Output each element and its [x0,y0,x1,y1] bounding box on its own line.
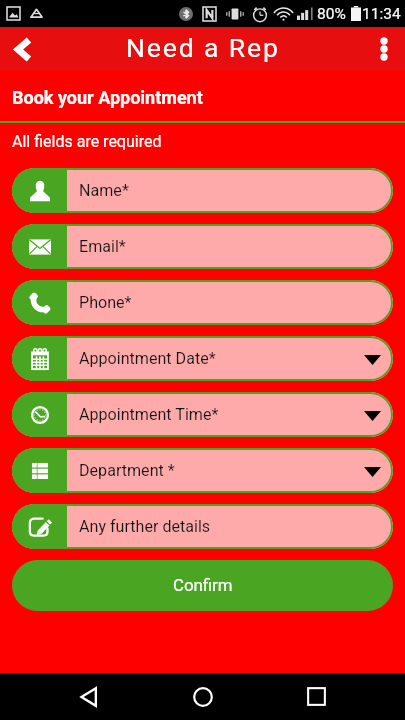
button[interactable]: Any further details [12,504,393,549]
staticText: Appointment Date* [79,349,364,368]
button[interactable]: Back [65,673,113,720]
staticText: Phone* [79,293,393,312]
staticText: Need a Rep [126,32,280,63]
button[interactable]: Phone* [12,280,393,325]
button[interactable]: Appointment Date* [12,336,393,381]
staticText: Department * [79,461,364,480]
button[interactable]: Name* [12,168,393,213]
button[interactable]: More options [363,27,405,70]
button[interactable]: Email* [12,224,393,269]
staticText: Any further details [79,517,393,536]
button[interactable]: Recents [292,673,340,720]
button[interactable]: Department * [12,448,393,493]
button[interactable]: Appointment Time* [12,392,393,437]
staticText: 11:34 [362,5,401,23]
staticText: Name* [79,181,393,200]
staticText: Confirm [173,575,233,595]
staticText: All fields are required [12,132,162,151]
button[interactable]: Back [0,27,44,70]
staticText: Email* [79,237,393,256]
button[interactable]: Confirm [12,560,393,611]
staticText: Book your Appointment [12,87,203,108]
staticText: 80% [317,5,346,23]
button[interactable]: Home [179,673,227,720]
staticText: Appointment Time* [79,405,364,424]
